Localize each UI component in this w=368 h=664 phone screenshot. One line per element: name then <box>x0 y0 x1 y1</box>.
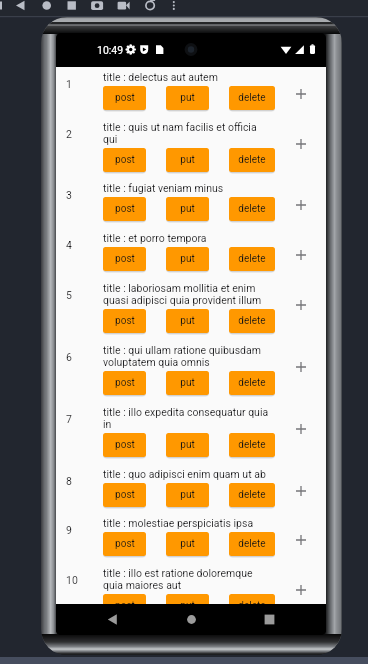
button[interactable]: post <box>103 433 146 457</box>
staticText: title : quo adipisci enim quam ut ab <box>103 468 269 480</box>
button[interactable]: put <box>166 148 209 172</box>
button[interactable]: put <box>166 309 209 333</box>
button[interactable]: delete <box>229 247 275 271</box>
button[interactable]: delete <box>229 148 275 172</box>
staticText: 10:49 <box>97 44 124 56</box>
staticText: put <box>180 154 195 166</box>
button[interactable]: delete <box>229 309 275 333</box>
staticText: delete <box>238 203 266 215</box>
button[interactable]: delete <box>229 197 275 221</box>
staticText: 4 <box>66 239 72 251</box>
staticText: put <box>180 253 195 265</box>
staticText: title : molestiae perspiciatis ipsa <box>103 517 269 529</box>
button[interactable]: put <box>166 371 209 395</box>
staticText: put <box>180 315 195 327</box>
button[interactable]: Add <box>275 585 326 595</box>
staticText: post <box>115 489 135 501</box>
staticText: delete <box>238 439 266 451</box>
button[interactable]: 9 <box>56 513 326 563</box>
button[interactable]: Add <box>275 89 326 99</box>
button[interactable]: post <box>103 532 146 556</box>
button[interactable]: 8 <box>56 464 326 514</box>
button[interactable]: Add <box>275 535 326 545</box>
staticText: put <box>180 377 195 389</box>
staticText: 2 <box>66 128 72 140</box>
button[interactable]: put <box>166 247 209 271</box>
staticText: 9 <box>66 524 72 536</box>
staticText: 3 <box>66 189 72 201</box>
button[interactable]: 4 <box>56 228 326 278</box>
staticText: delete <box>238 315 266 327</box>
button[interactable]: delete <box>229 86 275 110</box>
button[interactable]: put <box>166 594 209 618</box>
button[interactable]: delete <box>229 483 275 507</box>
staticText: title : illo est ratione doloremque quia… <box>103 567 269 591</box>
staticText: post <box>115 253 135 265</box>
button[interactable]: 10 <box>56 563 326 625</box>
button[interactable]: delete <box>229 532 275 556</box>
staticText: put <box>180 538 195 550</box>
button[interactable]: delete <box>229 433 275 457</box>
staticText: delete <box>238 600 266 612</box>
staticText: post <box>115 600 135 612</box>
button[interactable]: Add <box>275 424 326 434</box>
button[interactable]: Add <box>275 250 326 260</box>
button[interactable]: post <box>103 86 146 110</box>
staticText: title : delectus aut autem <box>103 71 269 83</box>
staticText: 7 <box>66 413 72 425</box>
staticText: title : et porro tempora <box>103 232 269 244</box>
staticText: 6 <box>66 351 72 363</box>
button[interactable]: put <box>166 483 209 507</box>
button[interactable]: delete <box>229 371 275 395</box>
staticText: post <box>115 315 135 327</box>
button[interactable]: post <box>103 483 146 507</box>
button[interactable]: put <box>166 532 209 556</box>
button[interactable]: 2 <box>56 117 326 179</box>
button[interactable]: delete <box>229 594 275 618</box>
staticText: post <box>115 439 135 451</box>
staticText: put <box>180 439 195 451</box>
button[interactable]: 6 <box>56 340 326 402</box>
staticText: 1 <box>66 78 72 90</box>
staticText: title : illo expedita consequatur quia i… <box>103 406 269 430</box>
button[interactable]: post <box>103 309 146 333</box>
button[interactable]: Add <box>275 200 326 210</box>
button[interactable]: Add <box>275 486 326 496</box>
button[interactable]: put <box>166 86 209 110</box>
button[interactable]: 7 <box>56 402 326 464</box>
staticText: put <box>180 600 195 612</box>
staticText: title : fugiat veniam minus <box>103 182 269 194</box>
staticText: delete <box>238 154 266 166</box>
staticText: put <box>180 92 195 104</box>
staticText: delete <box>238 253 266 265</box>
staticText: post <box>115 92 135 104</box>
staticText: title : quis ut nam facilis et officia q… <box>103 121 269 145</box>
button[interactable]: Add <box>275 139 326 149</box>
button[interactable]: put <box>166 433 209 457</box>
staticText: title : qui ullam ratione quibusdam volu… <box>103 344 269 368</box>
staticText: delete <box>238 92 266 104</box>
button[interactable]: post <box>103 148 146 172</box>
staticText: put <box>180 489 195 501</box>
staticText: 8 <box>66 475 72 487</box>
staticText: title : laboriosam mollitia et enim quas… <box>103 282 269 306</box>
button[interactable]: post <box>103 197 146 221</box>
staticText: delete <box>238 377 266 389</box>
button[interactable]: put <box>166 197 209 221</box>
staticText: delete <box>238 538 266 550</box>
button[interactable]: 5 <box>56 278 326 340</box>
staticText: put <box>180 203 195 215</box>
staticText: post <box>115 154 135 166</box>
button[interactable]: post <box>103 247 146 271</box>
button[interactable]: Add <box>275 362 326 372</box>
button[interactable]: 1 <box>56 67 326 117</box>
staticText: post <box>115 377 135 389</box>
button[interactable]: post <box>103 371 146 395</box>
staticText: post <box>115 538 135 550</box>
button[interactable]: post <box>103 594 146 618</box>
button[interactable]: Add <box>275 300 326 310</box>
button[interactable]: 3 <box>56 178 326 228</box>
staticText: delete <box>238 489 266 501</box>
staticText: post <box>115 203 135 215</box>
staticText: 10 <box>66 574 78 586</box>
